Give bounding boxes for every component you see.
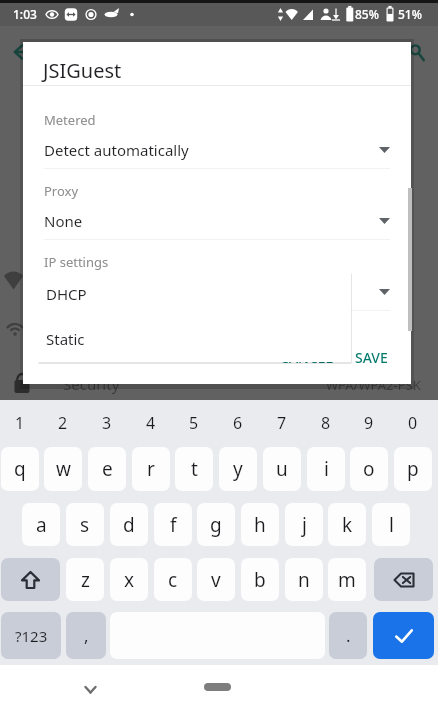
button[interactable]: w xyxy=(44,447,82,491)
staticText: 4 xyxy=(146,412,156,434)
button[interactable]: 3 xyxy=(88,400,126,446)
button[interactable]: n xyxy=(285,558,323,601)
button[interactable]: h xyxy=(241,503,279,546)
staticText: Security xyxy=(63,374,120,394)
staticText: DHCP xyxy=(44,282,85,302)
staticText: ?123 xyxy=(15,626,48,646)
button[interactable]: q xyxy=(1,447,39,491)
button[interactable]: 6 xyxy=(219,400,257,446)
staticText: 1 xyxy=(15,412,25,434)
staticText: w xyxy=(56,456,71,482)
staticText: f xyxy=(170,512,177,538)
button[interactable]: z xyxy=(66,558,104,601)
staticText: 0 xyxy=(408,412,418,434)
staticText: CANCEL xyxy=(280,348,334,366)
button[interactable]: m xyxy=(328,558,366,601)
button[interactable]: 7 xyxy=(263,400,301,446)
staticText: q xyxy=(14,456,26,482)
button[interactable]: Search xyxy=(402,36,434,68)
staticText: c xyxy=(168,567,178,593)
button[interactable]: d xyxy=(110,503,148,546)
button[interactable]: 8 xyxy=(307,400,345,446)
button[interactable]: u xyxy=(263,447,301,491)
button[interactable]: a xyxy=(22,503,60,546)
button[interactable]: DHCP xyxy=(37,271,351,316)
button[interactable]: i xyxy=(307,447,345,491)
button[interactable]: Metered xyxy=(23,111,411,169)
staticText: j xyxy=(302,512,307,538)
staticText: 3 xyxy=(102,412,112,434)
button[interactable]: y xyxy=(219,447,257,491)
button[interactable]: Home xyxy=(204,683,231,691)
staticText: a xyxy=(36,512,47,538)
button[interactable]: k xyxy=(328,503,366,546)
staticText: m xyxy=(338,567,356,593)
button[interactable]: 5 xyxy=(175,400,213,446)
staticText: g xyxy=(210,512,222,538)
button[interactable]: t xyxy=(175,447,213,491)
staticText: 8 xyxy=(321,412,331,434)
button[interactable]: Back xyxy=(0,36,34,70)
button[interactable]: e xyxy=(88,447,126,491)
button[interactable]: SAVE xyxy=(347,342,396,372)
button[interactable]: j xyxy=(285,503,323,546)
button[interactable]: 4 xyxy=(132,400,170,446)
staticText: r xyxy=(147,456,155,482)
staticText: o xyxy=(363,456,375,482)
button[interactable]: 0 xyxy=(394,400,432,446)
button[interactable]: c xyxy=(154,558,192,601)
staticText: l xyxy=(389,512,394,538)
staticText: i xyxy=(324,456,329,482)
staticText: 9 xyxy=(364,412,374,434)
button[interactable]: . xyxy=(329,612,367,659)
button[interactable]: p xyxy=(394,447,432,491)
staticText: e xyxy=(102,456,113,482)
button[interactable]: 9 xyxy=(350,400,388,446)
staticText: 85% xyxy=(355,6,379,22)
button[interactable]: v xyxy=(197,558,235,601)
staticText: 51% xyxy=(398,6,422,22)
staticText: u xyxy=(276,456,288,482)
staticText: t xyxy=(191,456,198,482)
staticText: , xyxy=(84,624,89,647)
button[interactable]: 1 xyxy=(1,400,39,446)
staticText: 6 xyxy=(233,412,243,434)
button[interactable]: Shift xyxy=(1,558,60,601)
staticText: Detect automatically xyxy=(44,140,189,160)
button[interactable]: Enter xyxy=(373,612,434,659)
button[interactable]: IP settings xyxy=(23,253,411,311)
staticText: z xyxy=(81,567,90,593)
button[interactable]: r xyxy=(132,447,170,491)
button[interactable]: CANCEL xyxy=(272,342,342,372)
button[interactable]: ?123 xyxy=(1,612,61,659)
button[interactable]: b xyxy=(241,558,279,601)
staticText: WPA/WPA2-PSK xyxy=(326,376,421,394)
button[interactable]: 2 xyxy=(44,400,82,446)
staticText: 7 xyxy=(277,412,287,434)
staticText: p xyxy=(407,456,419,482)
staticText: Metered xyxy=(44,111,96,129)
staticText: Static xyxy=(46,329,85,349)
staticText: h xyxy=(254,512,266,538)
staticText: 1:03 xyxy=(13,6,37,22)
staticText: SAVE xyxy=(355,348,388,366)
button[interactable]: Backspace xyxy=(374,558,433,601)
button[interactable]: g xyxy=(197,503,235,546)
staticText: Proxy xyxy=(44,182,79,200)
button[interactable]: Proxy xyxy=(23,182,411,240)
button[interactable]: f xyxy=(154,503,192,546)
staticText: . xyxy=(346,624,351,647)
button[interactable]: x xyxy=(110,558,148,601)
staticText: IP settings xyxy=(44,253,109,271)
button[interactable]: o xyxy=(350,447,388,491)
staticText: DHCP xyxy=(46,284,87,304)
staticText: v xyxy=(211,567,221,593)
staticText: JSIGuest xyxy=(43,57,122,84)
button[interactable]: Hide keyboard xyxy=(74,672,107,704)
button[interactable]: Static xyxy=(37,316,351,362)
button[interactable]: s xyxy=(66,503,104,546)
staticText: x xyxy=(124,567,135,593)
button[interactable]: , xyxy=(66,612,106,659)
button[interactable]: l xyxy=(372,503,410,546)
